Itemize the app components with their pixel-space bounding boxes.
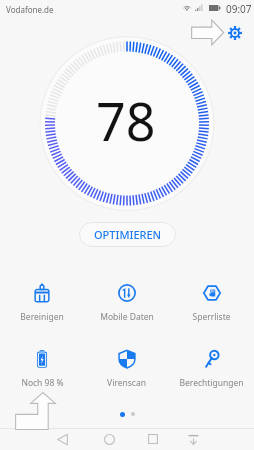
button[interactable]: Settings xyxy=(224,22,246,44)
staticText: Mobile Daten xyxy=(100,311,154,323)
staticText: Noch 98 % xyxy=(21,377,64,389)
button[interactable]: Noch 98 % xyxy=(0,347,84,392)
staticText: Bereinigen xyxy=(20,311,64,323)
staticText: Virenscan xyxy=(107,377,146,389)
button[interactable]: Home xyxy=(98,428,120,450)
button[interactable]: Hide navigation bar xyxy=(182,428,204,450)
button[interactable]: Recent apps xyxy=(142,428,164,450)
button[interactable]: OPTIMIEREN xyxy=(79,222,176,247)
button[interactable]: Bereinigen xyxy=(0,281,84,326)
button[interactable]: Berechtigungen xyxy=(169,347,254,392)
staticText: Berechtigungen xyxy=(179,377,244,389)
button[interactable]: Back xyxy=(51,428,73,450)
button[interactable]: Sperrliste xyxy=(169,281,254,326)
staticText: 09:07 xyxy=(226,2,252,16)
button[interactable]: Virenscan xyxy=(84,347,169,392)
staticText: Vodafone.de xyxy=(6,4,54,15)
button[interactable]: Mobile Daten xyxy=(84,281,169,326)
staticText: Sperrliste xyxy=(192,311,231,323)
staticText: OPTIMIEREN xyxy=(94,227,162,242)
staticText: 78 xyxy=(96,85,156,156)
